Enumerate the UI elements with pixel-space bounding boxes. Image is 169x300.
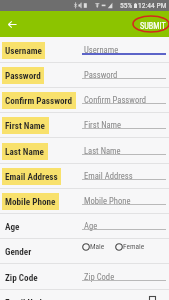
staticText: First Name <box>5 120 46 131</box>
button[interactable]: Male <box>82 242 105 251</box>
staticText: Zip Code <box>84 272 115 282</box>
staticText: Female <box>123 242 145 251</box>
button[interactable]: SUBMIT <box>140 21 166 31</box>
button[interactable]: Email updates checkbox <box>147 294 157 300</box>
staticText: First Name <box>84 120 122 130</box>
staticText: Mobile Phone <box>5 196 56 207</box>
staticText: 12:44 PM <box>138 1 167 10</box>
button[interactable]: Zip Code <box>0 264 169 290</box>
button[interactable]: Email Address <box>0 164 169 189</box>
staticText: Confirm Password <box>5 95 73 106</box>
button[interactable]: Female <box>115 242 145 251</box>
button[interactable]: Mobile Phone <box>0 189 169 214</box>
staticText: Confirm Password <box>84 95 146 105</box>
staticText: Username <box>5 45 42 56</box>
staticText: Age <box>5 221 20 232</box>
staticText: Age <box>84 221 98 231</box>
staticText: Email Updates <box>5 297 58 300</box>
staticText: Mobile Phone <box>84 196 131 206</box>
button[interactable]: Password <box>0 63 169 88</box>
staticText: Username <box>84 45 119 55</box>
staticText: SUBMIT <box>140 21 166 31</box>
staticText: Male <box>90 242 105 251</box>
button[interactable]: First Name <box>0 113 169 138</box>
staticText: Zip Code <box>5 272 38 283</box>
staticText: Email Address <box>84 171 133 181</box>
button[interactable]: Email Updates <box>0 290 169 300</box>
staticText: Last Name <box>84 146 121 156</box>
button[interactable]: Username <box>0 37 169 63</box>
button[interactable]: Last Name <box>0 138 169 164</box>
staticText: Password <box>5 70 41 81</box>
button[interactable]: Age <box>0 214 169 239</box>
staticText: Last Name <box>5 146 45 157</box>
staticText: Email Address <box>5 171 58 182</box>
staticText: Gender <box>5 246 32 257</box>
staticText: Password <box>84 70 118 80</box>
button[interactable]: Confirm Password <box>0 88 169 113</box>
staticText: 55% <box>120 1 133 10</box>
button[interactable]: Navigate up <box>0 11 24 37</box>
button[interactable]: Gender <box>0 239 169 264</box>
